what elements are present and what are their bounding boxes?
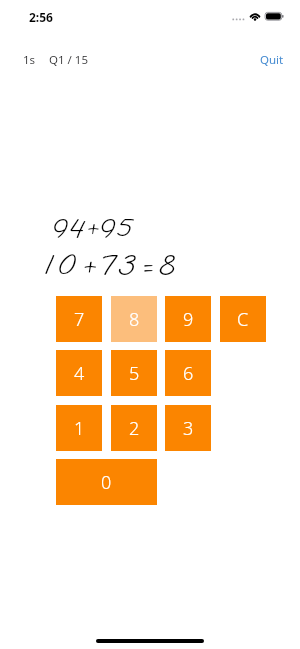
staticText: Q1 / 15 [49,52,88,68]
staticText: 1s [23,52,36,68]
staticText: 0 [101,470,112,495]
button[interactable]: 4 [56,350,102,396]
button[interactable]: 7 [56,296,102,342]
staticText: 2 [129,416,140,441]
staticText: 10+73=8 [44,245,181,283]
button[interactable]: 3 [165,405,211,451]
button[interactable]: 6 [165,350,211,396]
staticText: 9 [183,307,194,332]
staticText: 3 [183,416,194,441]
staticText: 8 [129,307,140,332]
staticText: 4 [74,361,85,386]
staticText: 94+95 [52,210,133,244]
button[interactable]: 1 [56,405,102,451]
staticText: 2:56 [29,9,53,25]
staticText: 1 [74,416,85,441]
staticText: Quit [260,52,284,68]
button[interactable]: 2 [111,405,157,451]
staticText: 5 [129,361,140,386]
button[interactable]: Quit [260,52,284,68]
button[interactable]: 9 [165,296,211,342]
staticText: 7 [74,307,85,332]
button[interactable]: 0 [56,459,157,505]
staticText: C [237,307,249,332]
button[interactable]: 8 [111,296,157,342]
staticText: 6 [183,361,194,386]
button[interactable]: C [220,296,266,342]
button[interactable]: 5 [111,350,157,396]
